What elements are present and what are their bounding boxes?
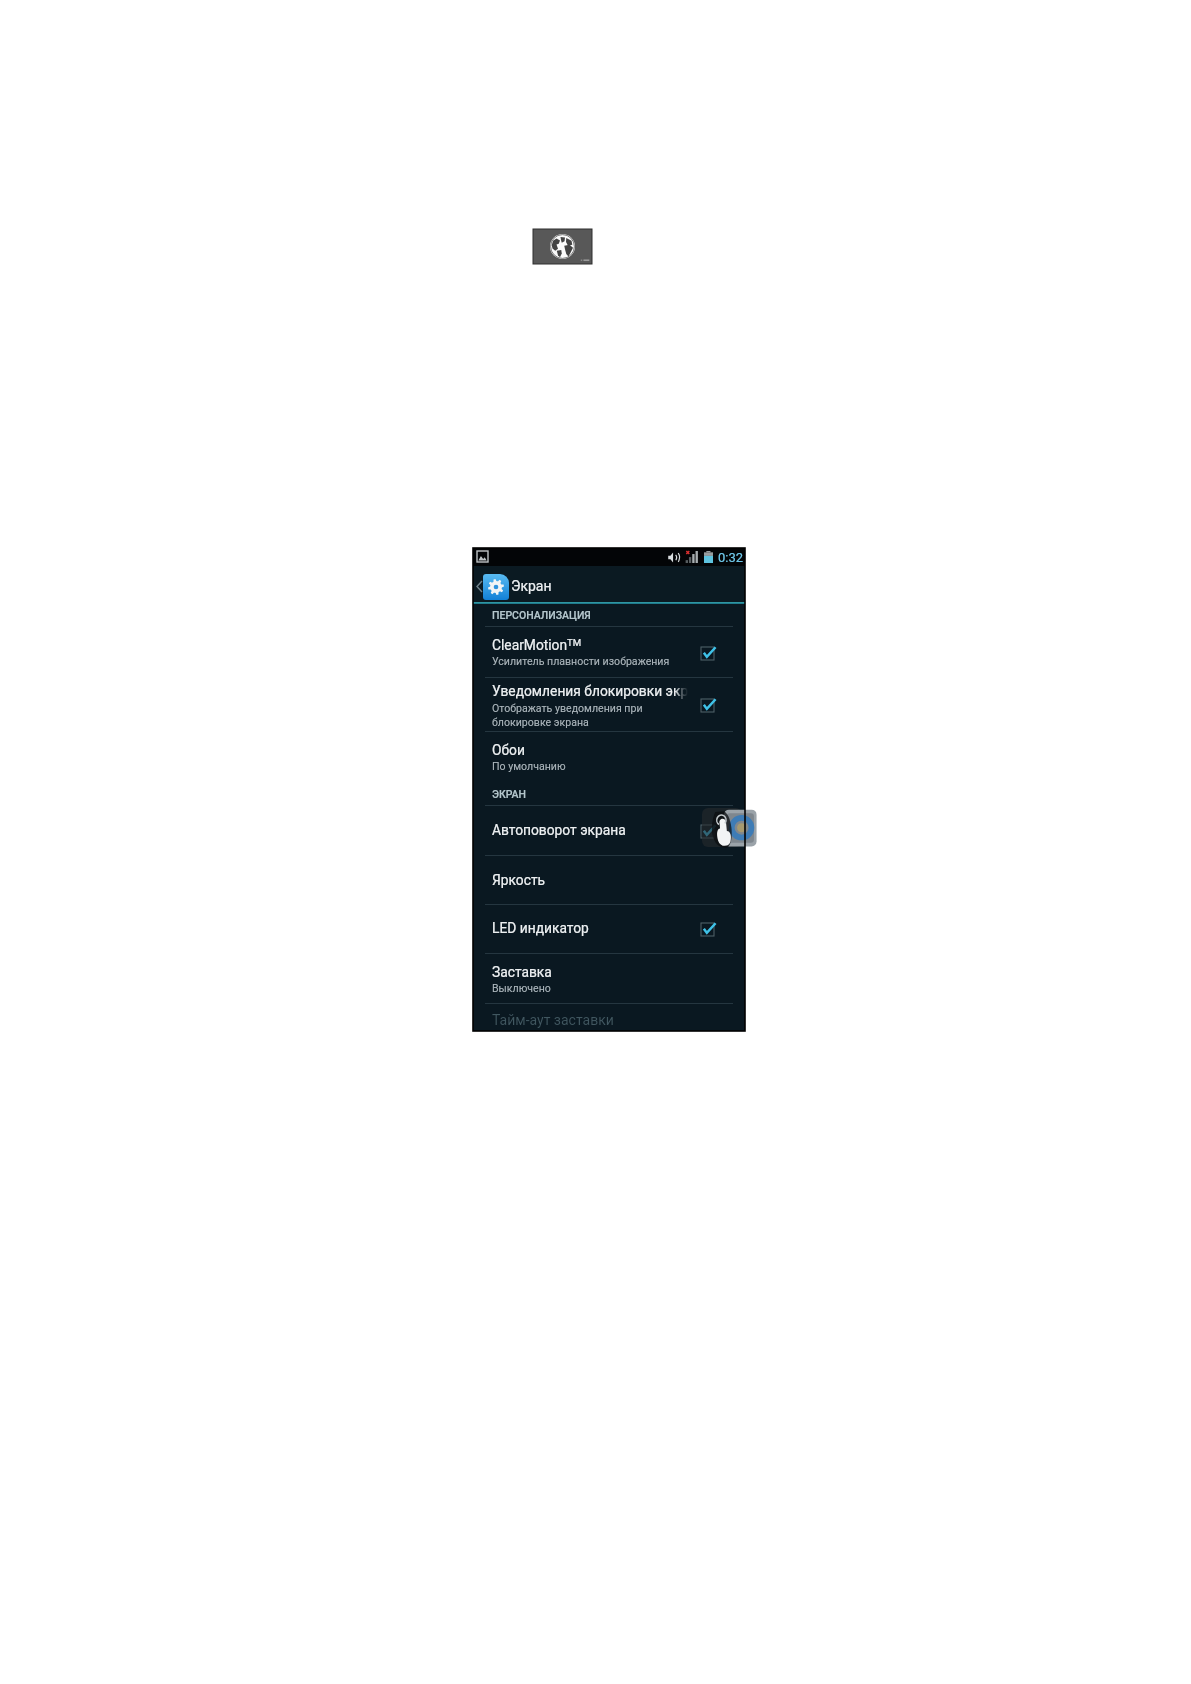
staticText: Автоповорот экрана [492, 822, 626, 838]
staticText: 0:32 [718, 550, 744, 565]
staticText: ClearMotionTM [492, 637, 582, 653]
button[interactable]: Автоповорот экрана [473, 805, 745, 855]
button[interactable]: Navigate up to Settings [473, 566, 745, 602]
button[interactable]: Яркость [473, 855, 745, 904]
staticText: Уведомления блокировки экр [492, 683, 688, 699]
button[interactable]: Обои [473, 731, 745, 782]
staticText: Отображать уведомления при блокировке эк… [492, 702, 643, 729]
staticText: Обои [492, 742, 525, 758]
button[interactable]: Заставка [473, 953, 745, 1003]
staticText: Яркость [492, 872, 546, 888]
staticText: ПЕРСОНАЛИЗАЦИЯ [492, 609, 591, 621]
button[interactable]: LED индикатор [473, 904, 745, 953]
button[interactable]: Уведомления блокировки экр [473, 677, 745, 731]
button[interactable]: Тайм-аут заставки [473, 1004, 745, 1031]
staticText: Экран [511, 578, 552, 594]
staticText: Заставка [492, 964, 552, 980]
button[interactable]: ClearMotionTM [473, 626, 745, 677]
staticText: LED индикатор [492, 920, 589, 936]
staticText: Тайм-аут заставки [492, 1012, 614, 1028]
staticText: Выключено [492, 982, 551, 994]
button[interactable]: Globe [533, 229, 592, 264]
staticText: По умолчанию [492, 760, 566, 772]
staticText: Усилитель плавности изображения [492, 655, 670, 667]
staticText: ЭКРАН [492, 788, 527, 800]
